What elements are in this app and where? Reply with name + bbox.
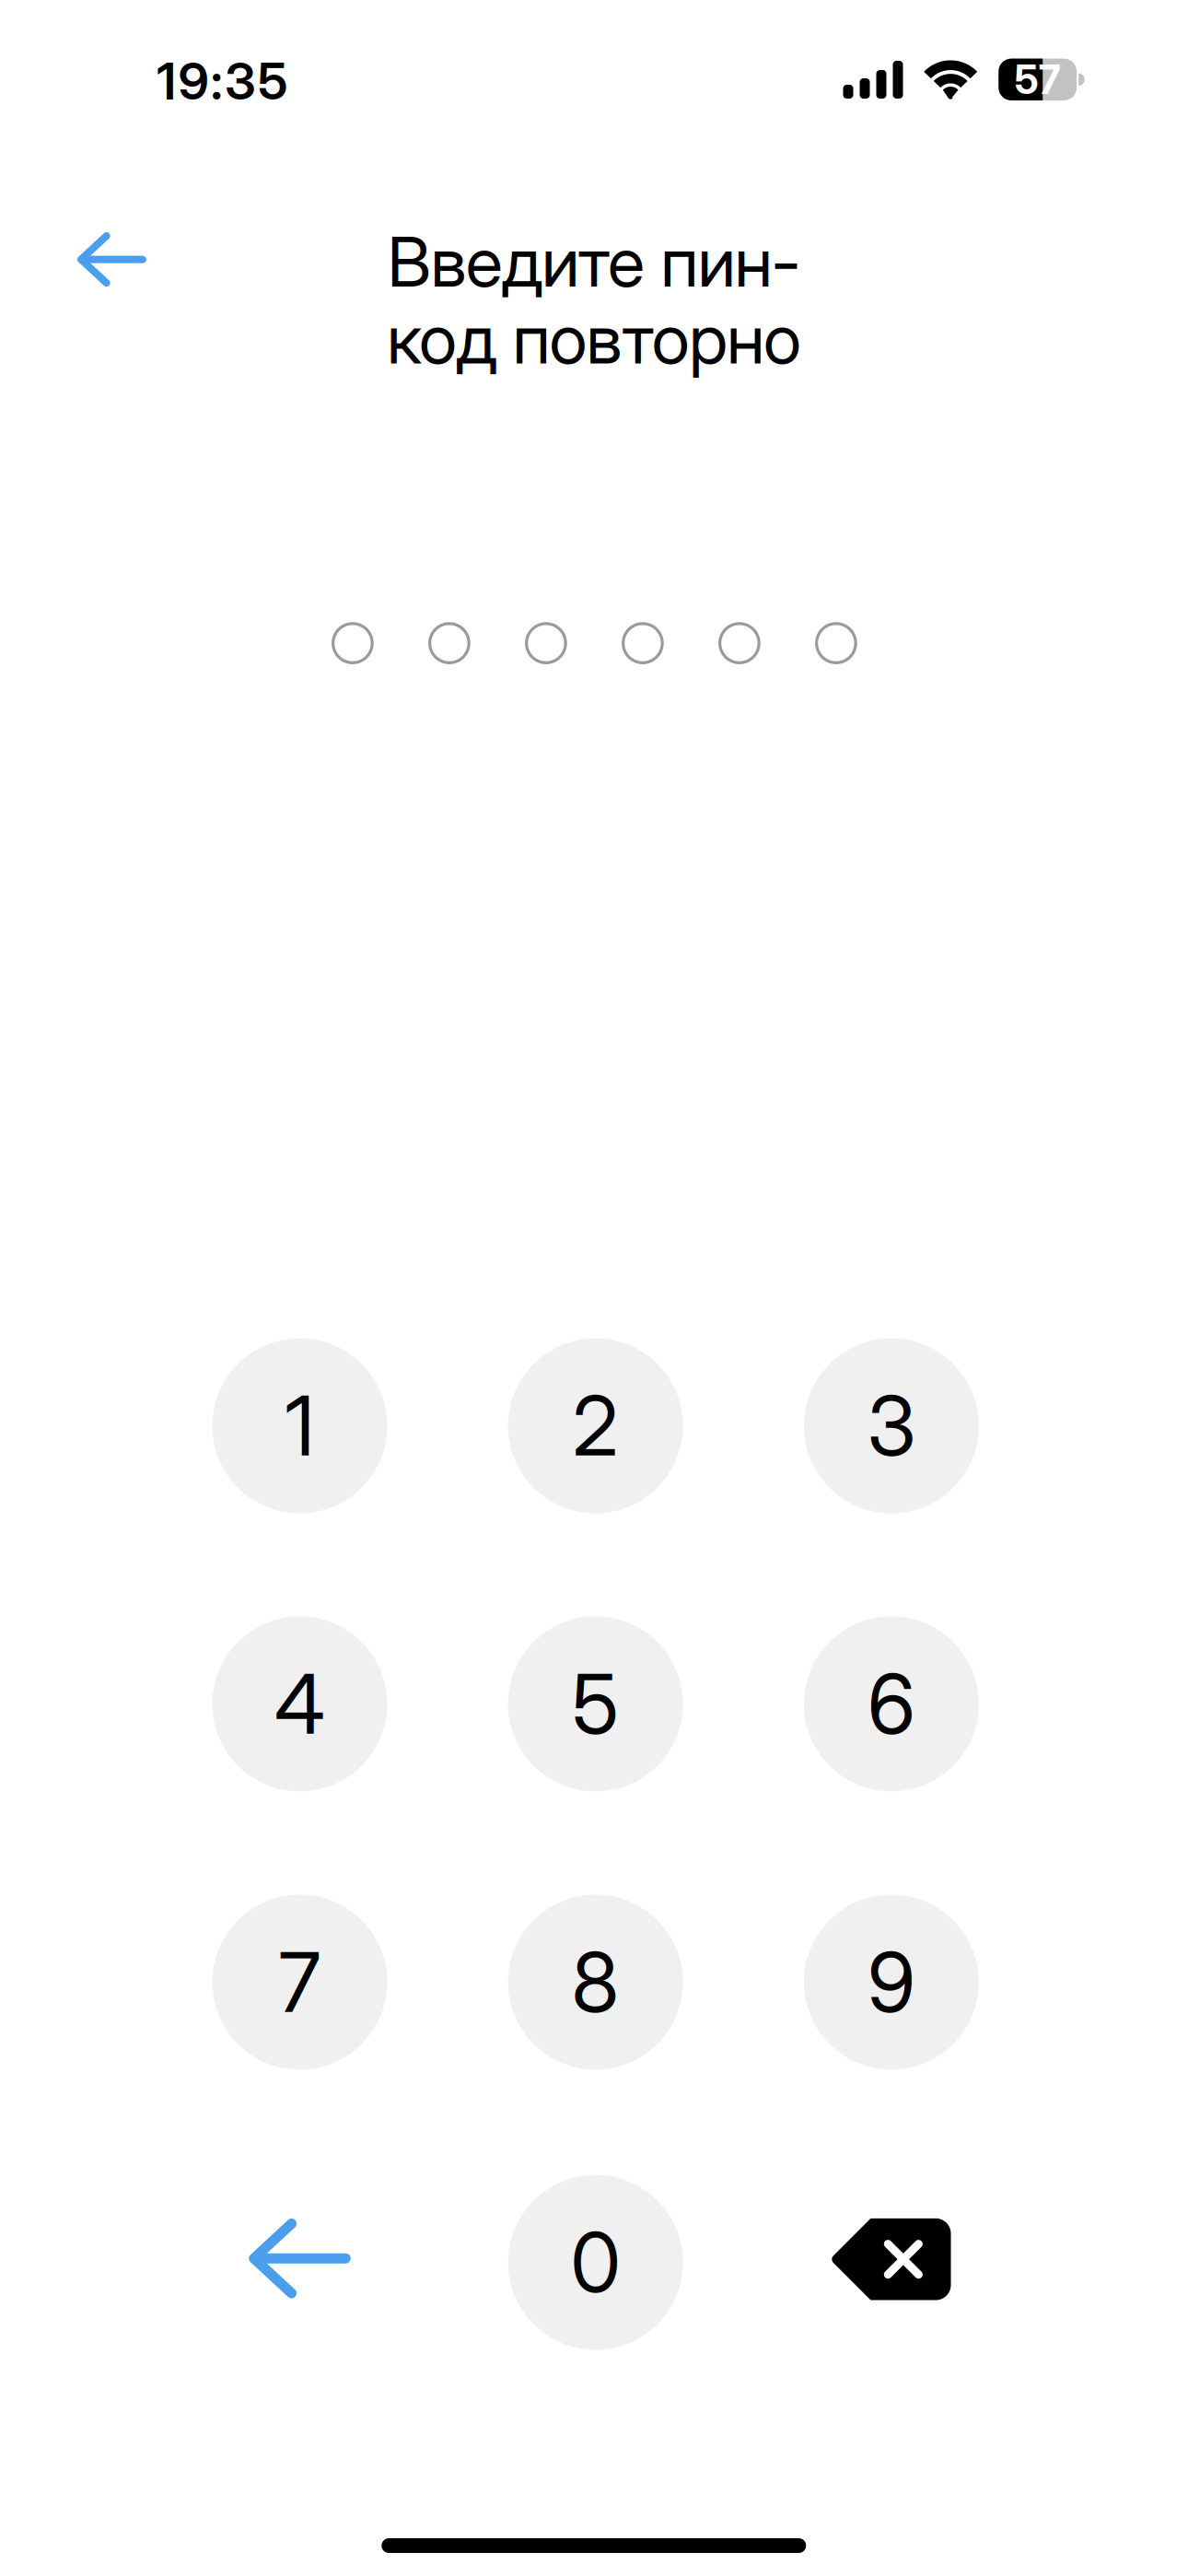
staticText: 7 <box>279 1933 321 2032</box>
staticText: 0 <box>571 2213 620 2312</box>
button[interactable]: 5 <box>508 1616 683 1791</box>
button[interactable]: Удалить <box>804 2172 979 2347</box>
staticText: 5 <box>258 50 287 112</box>
staticText: Введите пин- код повторно <box>387 220 801 380</box>
staticText: 57 <box>1015 55 1061 104</box>
staticText: 3 <box>225 50 256 112</box>
staticText: 6 <box>867 1654 915 1753</box>
button[interactable]: Назад <box>212 2171 387 2346</box>
staticText: 4 <box>274 1654 325 1753</box>
button[interactable]: 9 <box>804 1895 979 2070</box>
button[interactable]: 7 <box>212 1895 387 2070</box>
staticText: 1 <box>157 50 176 112</box>
staticText: : <box>211 50 223 112</box>
button[interactable]: 0 <box>508 2175 683 2350</box>
staticText: 5 <box>572 1654 619 1753</box>
button[interactable]: 4 <box>212 1616 387 1791</box>
staticText: 8 <box>572 1933 619 2032</box>
button[interactable]: Назад <box>52 200 172 319</box>
staticText: 2 <box>572 1376 618 1475</box>
button[interactable]: 2 <box>508 1338 683 1513</box>
button[interactable]: 1 <box>212 1338 387 1513</box>
button[interactable]: 3 <box>804 1338 979 1513</box>
staticText: 9 <box>178 50 209 112</box>
button[interactable]: 8 <box>508 1895 683 2070</box>
button[interactable]: 6 <box>804 1616 979 1791</box>
staticText: 9 <box>867 1933 915 2032</box>
staticText: 3 <box>867 1376 916 1475</box>
staticText: 1 <box>285 1376 314 1475</box>
